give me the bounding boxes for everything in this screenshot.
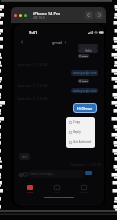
staticText: Reply [73,130,81,134]
staticText: September 11, 2:45 AM [17,84,101,88]
staticText: September 11, 6:03 PM [17,163,101,167]
button[interactable]: Reply [66,127,95,137]
button[interactable]: gmail [52,40,67,45]
button[interactable]: Settings [76,184,92,195]
staticText: September 11, 2:42 AM [17,63,101,67]
staticText: Calls [54,191,60,194]
button[interactable]: Chats [22,184,38,195]
staticText: iOS 16.0 [33,16,45,20]
button[interactable]: Calls [49,184,65,195]
staticText: 9:41 [29,30,38,36]
staticText: Reply [82,80,88,83]
staticText: Hi Dhruv [77,106,93,111]
button[interactable]: Send a message... [29,170,84,178]
staticText: Hello [85,49,92,53]
button[interactable]: Reply [78,79,89,83]
staticText: gmail [52,40,63,45]
button[interactable] [78,44,98,48]
button[interactable]: Reply [78,54,89,58]
staticText: Settings [80,191,89,194]
button[interactable]: www.google.com [71,88,98,93]
staticText: Copy [73,120,81,124]
staticText: Reply [82,55,88,58]
staticText: www.google.com [73,89,97,93]
staticText: iPhone 14 Pro [33,11,61,16]
button[interactable]: Send [85,171,92,175]
staticText: Chats [27,191,34,194]
button[interactable]: test [19,153,30,160]
button[interactable]: Copy [66,117,95,127]
button[interactable]: www.google.com [71,70,98,76]
button[interactable]: Rotate right [95,11,103,19]
button[interactable]: Get Archived [66,137,95,147]
staticText: www.google.com [73,71,97,75]
staticText: Get Archived [73,140,91,144]
button[interactable]: Back [17,37,26,46]
staticText: test [22,155,27,159]
button[interactable]: Hi Dhruv [73,103,97,113]
staticText: September 11, 2:47 AM [17,97,101,101]
button[interactable]: Camera [23,172,28,177]
button[interactable]: Add attachment [18,172,23,177]
button[interactable]: Hello [78,48,98,53]
button[interactable]: Rotate left [85,11,93,19]
staticText: Send a message... [30,172,56,176]
